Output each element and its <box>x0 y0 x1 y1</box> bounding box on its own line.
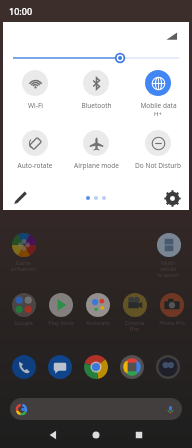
button[interactable]: Google <box>10 293 37 326</box>
button[interactable]: Mobile data <box>128 70 188 118</box>
button[interactable]: App <box>48 355 72 379</box>
staticText: Airplane mode <box>74 161 119 170</box>
staticText: Game enhancer <box>11 259 36 273</box>
staticText: Cinema Pro <box>121 319 148 333</box>
button[interactable]: Game enhancer <box>10 233 37 273</box>
button[interactable]: Auto-rotate <box>5 130 65 170</box>
button[interactable]: App <box>120 355 144 379</box>
staticText: Photo Pro <box>159 319 185 326</box>
button[interactable]: Back <box>46 428 60 442</box>
button[interactable]: Recents <box>132 428 146 442</box>
button[interactable]: Wi-Fi <box>5 70 65 110</box>
button[interactable]: Cinema Pro <box>121 293 148 333</box>
button[interactable]: Multi-windo w switch <box>155 233 182 279</box>
other: Signal strength <box>163 28 179 44</box>
staticText: 10:00 <box>9 5 33 17</box>
staticText: Wi-Fi <box>28 101 43 110</box>
button[interactable]: Settings <box>164 190 181 207</box>
button[interactable]: Home <box>89 428 103 442</box>
button[interactable]: App <box>84 355 108 379</box>
staticText: Auto-rotate <box>17 161 53 170</box>
staticText: Google <box>14 319 33 326</box>
button[interactable]: Do Not Disturb <box>128 130 188 170</box>
button[interactable]: Assistant <box>84 293 111 326</box>
button[interactable]: App <box>156 355 180 379</box>
button[interactable]: Search <box>10 398 182 420</box>
staticText: H+ <box>154 110 162 118</box>
staticText: Assistant <box>86 319 110 326</box>
button[interactable]: App <box>12 355 36 379</box>
staticText: Do Not Disturb <box>135 161 181 170</box>
button[interactable]: Bluetooth <box>66 70 126 110</box>
button[interactable]: Airplane mode <box>66 130 126 170</box>
staticText: Multi-windo w switch <box>155 259 182 279</box>
staticText: Bluetooth <box>81 101 112 110</box>
staticText: Play Store <box>48 319 74 326</box>
staticText: Mobile data <box>140 101 177 110</box>
button[interactable]: Edit tiles <box>11 189 29 207</box>
button[interactable]: Photo Pro <box>158 293 185 326</box>
button[interactable]: Brightness <box>3 51 189 65</box>
button[interactable]: Play Store <box>47 293 74 326</box>
